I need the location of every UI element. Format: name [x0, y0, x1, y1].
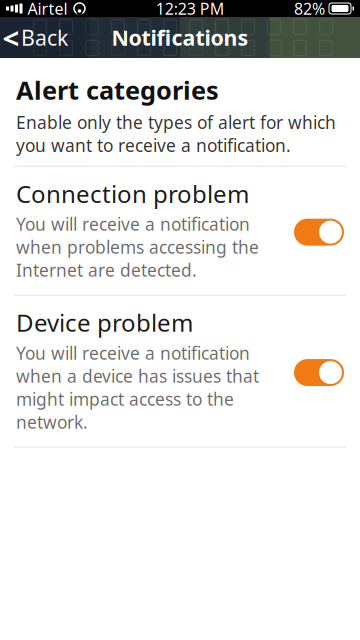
staticText: Device problem — [16, 307, 193, 338]
button[interactable]: Connection problem — [0, 167, 360, 295]
staticText: Enable only the types of alert for which… — [16, 111, 336, 157]
staticText: You will receive a notification when pro… — [16, 212, 259, 282]
button[interactable]: < — [0, 17, 80, 58]
staticText: < — [2, 18, 19, 57]
staticText: Notifications — [111, 23, 248, 52]
staticText: Alert categories — [16, 73, 219, 107]
staticText: Back — [21, 23, 68, 52]
staticText: Connection problem — [16, 178, 249, 210]
staticText: 82% — [294, 0, 325, 19]
staticText: Airtel — [27, 0, 67, 19]
button[interactable]: Device problem — [0, 296, 360, 446]
staticText: You will receive a notification when a d… — [16, 341, 259, 434]
staticText: 12:23 PM — [156, 0, 225, 19]
